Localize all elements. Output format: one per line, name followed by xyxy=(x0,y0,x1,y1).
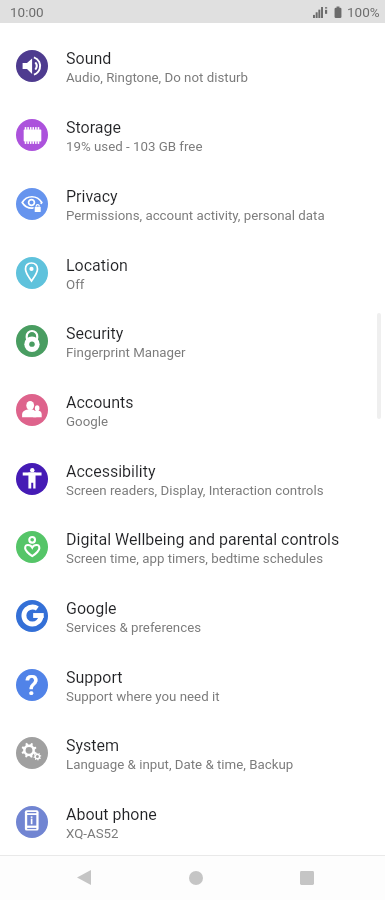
button[interactable]: About phone xyxy=(0,787,385,855)
button[interactable]: Storage xyxy=(0,100,385,169)
staticText: Permissions, account activity, personal … xyxy=(66,208,325,224)
staticText: Google xyxy=(66,599,117,618)
staticText: Security xyxy=(66,324,124,343)
staticText: Audio, Ringtone, Do not disturb xyxy=(66,70,248,86)
staticText: 100% xyxy=(347,4,380,20)
staticText: Google xyxy=(66,414,108,430)
button[interactable]: Recent apps xyxy=(279,855,335,900)
staticText: Services & preferences xyxy=(66,620,202,636)
staticText: Digital Wellbeing and parental controls xyxy=(66,530,340,549)
button[interactable]: Security xyxy=(0,307,385,375)
staticText: Accounts xyxy=(66,393,134,412)
staticText: Storage xyxy=(66,118,121,137)
button[interactable]: Home xyxy=(168,855,224,900)
staticText: XQ-AS52 xyxy=(66,826,119,842)
staticText: Accessibility xyxy=(66,462,156,481)
staticText: Privacy xyxy=(66,187,118,206)
button[interactable]: Location xyxy=(0,238,385,307)
button[interactable]: Accounts xyxy=(0,375,385,444)
staticText: 10:00 xyxy=(10,4,44,20)
button[interactable]: System xyxy=(0,719,385,787)
staticText: About phone xyxy=(66,805,157,824)
staticText: 19% used - 103 GB free xyxy=(66,139,203,155)
button[interactable]: Google xyxy=(0,581,385,650)
staticText: Sound xyxy=(66,49,112,68)
staticText: Fingerprint Manager xyxy=(66,345,186,361)
staticText: Support xyxy=(66,668,123,687)
staticText: Language & input, Date & time, Backup xyxy=(66,757,294,773)
button[interactable]: Privacy xyxy=(0,169,385,238)
button[interactable]: Back xyxy=(56,855,112,900)
button[interactable]: Accessibility xyxy=(0,444,385,513)
staticText: Off xyxy=(66,277,85,293)
staticText: Screen time, app timers, bedtime schedul… xyxy=(66,551,324,567)
staticText: Support where you need it xyxy=(66,689,220,705)
staticText: System xyxy=(66,736,120,755)
button[interactable]: ? xyxy=(0,650,385,719)
staticText: Screen readers, Display, Interaction con… xyxy=(66,483,324,499)
button[interactable]: Digital Wellbeing and parental controls xyxy=(0,513,385,581)
staticText: ? xyxy=(25,669,39,701)
staticText: Location xyxy=(66,256,128,275)
button[interactable]: Sound xyxy=(0,23,385,100)
